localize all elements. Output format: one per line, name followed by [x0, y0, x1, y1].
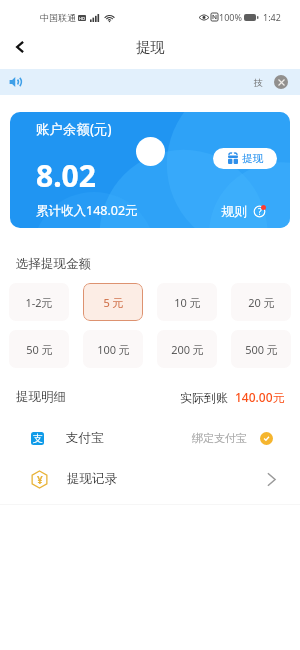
- staticText: ¥: [37, 473, 43, 487]
- button[interactable]: 5 元: [83, 283, 143, 321]
- staticText: 支: [33, 432, 43, 445]
- button[interactable]: 规则: [221, 203, 266, 219]
- staticText: 1-2元: [25, 295, 53, 310]
- staticText: 1:42: [263, 11, 281, 23]
- staticText: 中国联通: [40, 12, 76, 23]
- button[interactable]: Close: [274, 75, 288, 89]
- staticText: 支付宝: [66, 430, 104, 446]
- staticText: 50 元: [26, 342, 53, 357]
- button[interactable]: 200 元: [157, 330, 217, 368]
- staticText: 提现记录: [67, 471, 117, 487]
- staticText: 5 元: [103, 295, 124, 310]
- staticText: 100 元: [97, 342, 130, 357]
- staticText: 500 元: [245, 342, 278, 357]
- staticText: 140.00元: [235, 389, 285, 405]
- staticText: 提现: [136, 38, 165, 56]
- staticText: 技: [254, 77, 263, 88]
- button[interactable]: 支: [31, 427, 273, 449]
- staticText: 选择提现金额: [16, 256, 91, 272]
- button[interactable]: 10 元: [157, 283, 217, 321]
- staticText: 提现: [242, 152, 263, 165]
- staticText: 100%: [219, 11, 242, 23]
- staticText: HD: [79, 16, 85, 21]
- button[interactable]: 1-2元: [9, 283, 69, 321]
- staticText: 20 元: [248, 295, 275, 310]
- button[interactable]: Back: [5, 32, 35, 62]
- staticText: 200 元: [171, 342, 204, 357]
- staticText: 账户余额(元): [36, 120, 112, 138]
- button[interactable]: 50 元: [9, 330, 69, 368]
- staticText: 10 元: [174, 295, 201, 310]
- staticText: 规则: [221, 203, 247, 219]
- button[interactable]: ¥: [31, 468, 276, 490]
- staticText: 8.02: [36, 155, 96, 196]
- staticText: 实际到账: [180, 390, 228, 405]
- button[interactable]: 500 元: [231, 330, 291, 368]
- button[interactable]: 20 元: [231, 283, 291, 321]
- staticText: ?: [258, 206, 262, 218]
- button[interactable]: 提现: [213, 148, 277, 169]
- button[interactable]: 100 元: [83, 330, 143, 368]
- staticText: 累计收入148.02元: [36, 202, 138, 219]
- staticText: 绑定支付宝: [192, 431, 247, 445]
- staticText: 提现明细: [16, 389, 66, 405]
